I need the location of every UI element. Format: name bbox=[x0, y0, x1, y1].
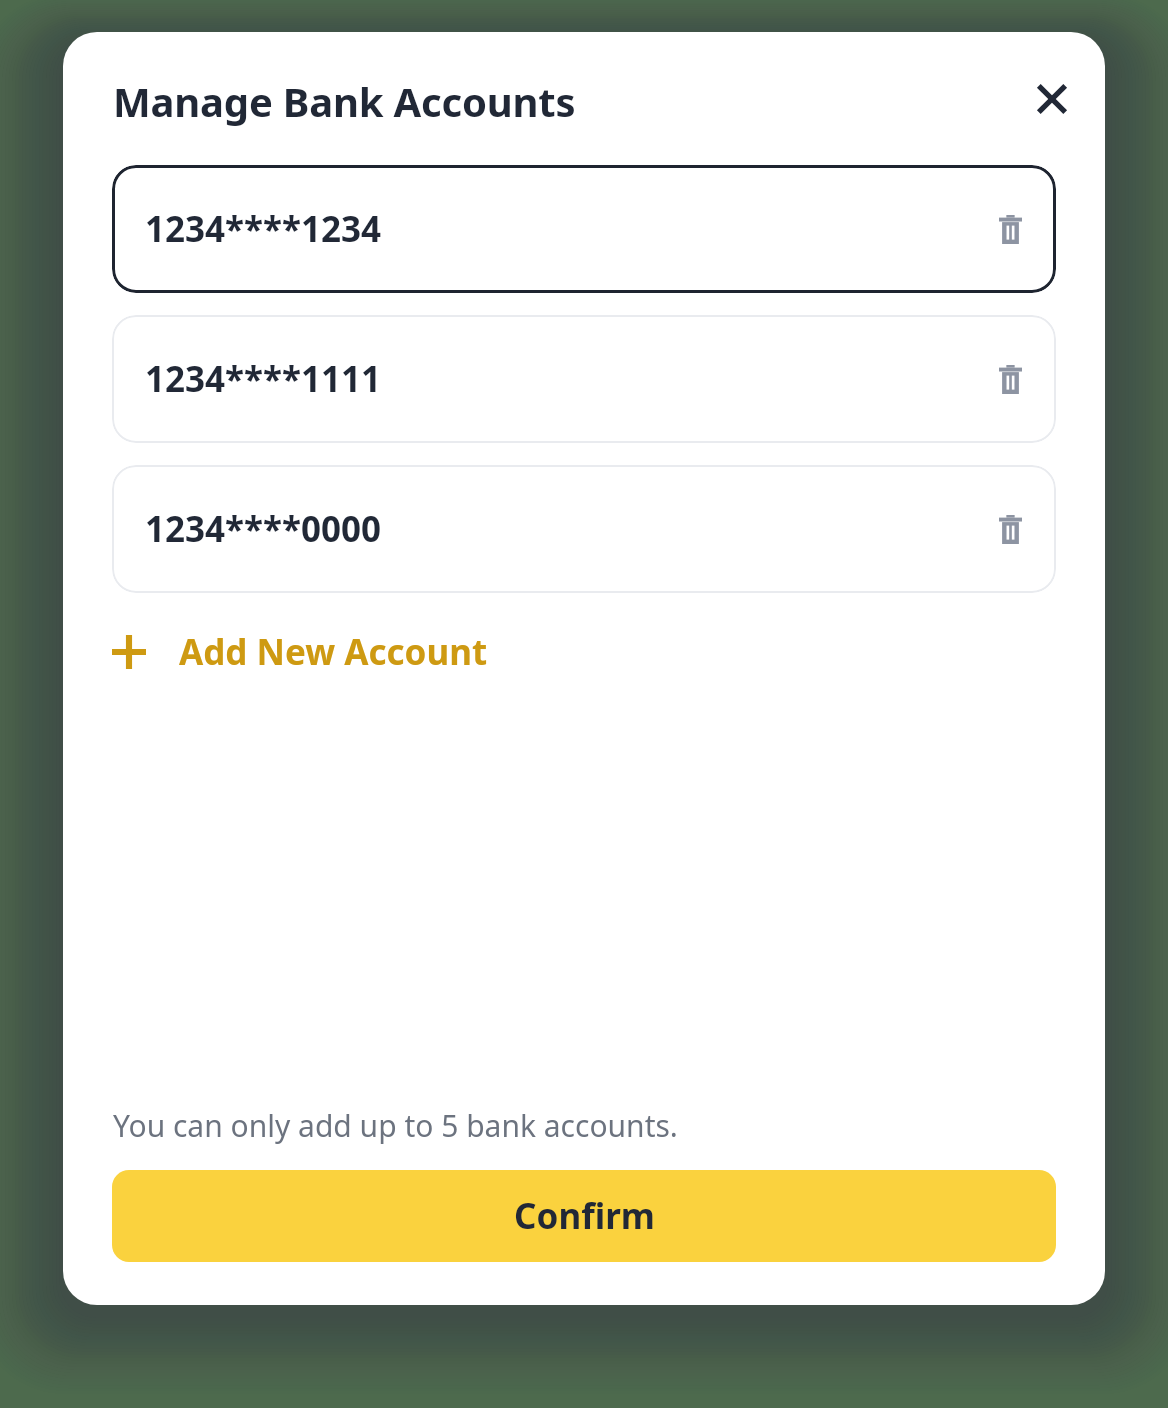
button[interactable]: 1234****1111 bbox=[112, 315, 1056, 443]
button[interactable]: 1234****1234 bbox=[112, 165, 1056, 293]
staticText: 1234****0000 bbox=[145, 505, 382, 553]
button[interactable]: Delete account bbox=[984, 503, 1036, 555]
button[interactable]: Close bbox=[1024, 71, 1080, 127]
staticText: 1234****1111 bbox=[145, 355, 382, 403]
staticText: Manage Bank Accounts bbox=[113, 74, 576, 128]
staticText: Add New Account bbox=[179, 628, 488, 676]
staticText: Confirm bbox=[514, 1192, 655, 1240]
staticText: 1234****1234 bbox=[145, 205, 382, 253]
button[interactable]: Confirm bbox=[112, 1170, 1056, 1262]
button[interactable]: Delete account bbox=[984, 353, 1036, 405]
button[interactable]: Add New Account bbox=[103, 617, 497, 687]
button[interactable]: Delete account bbox=[984, 203, 1036, 255]
button[interactable]: 1234****0000 bbox=[112, 465, 1056, 593]
staticText: You can only add up to 5 bank accounts. bbox=[113, 1105, 678, 1146]
